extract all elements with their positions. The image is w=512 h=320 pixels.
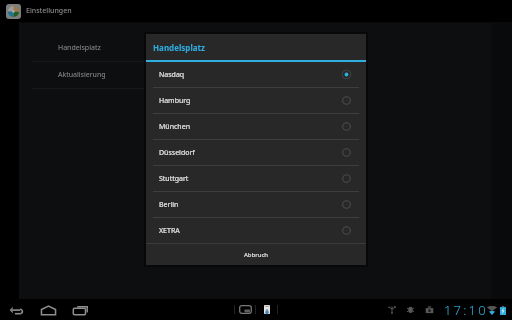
staticText: München	[159, 122, 190, 132]
button[interactable]: Stuttgart	[146, 166, 366, 191]
button[interactable]: Nasdaq	[146, 62, 366, 87]
staticText: Handelsplatz	[153, 42, 205, 53]
staticText: Düsseldorf	[159, 148, 195, 158]
staticText: 17:10	[444, 301, 488, 319]
staticText: Berlin	[159, 200, 179, 210]
staticText: Handelsplatz	[58, 43, 101, 53]
button[interactable]: Home	[36, 303, 60, 318]
button[interactable]: Düsseldorf	[146, 140, 366, 165]
staticText: XETRA	[159, 226, 180, 236]
button[interactable]: Back	[4, 303, 28, 320]
staticText: Abbruch	[244, 251, 268, 259]
button[interactable]: Aktualisierung	[31, 62, 145, 88]
staticText: Einstellungen	[26, 6, 72, 16]
button[interactable]: Recent apps	[68, 303, 92, 318]
button[interactable]: Einstellungen	[0, 0, 512, 22]
button[interactable]: Berlin	[146, 192, 366, 217]
button[interactable]: Screenshot	[236, 303, 254, 316]
button[interactable]: München	[146, 114, 366, 139]
button[interactable]: Hamburg	[146, 88, 366, 113]
staticText: Stuttgart	[159, 174, 189, 184]
staticText: Hamburg	[159, 96, 191, 106]
staticText: Aktualisierung	[58, 70, 106, 80]
button[interactable]: XETRA	[146, 218, 366, 243]
button[interactable]: Handelsplatz	[31, 35, 145, 61]
staticText: Nasdaq	[159, 70, 185, 80]
button[interactable]: Abbruch	[146, 244, 366, 265]
button[interactable]: Device	[258, 303, 275, 316]
